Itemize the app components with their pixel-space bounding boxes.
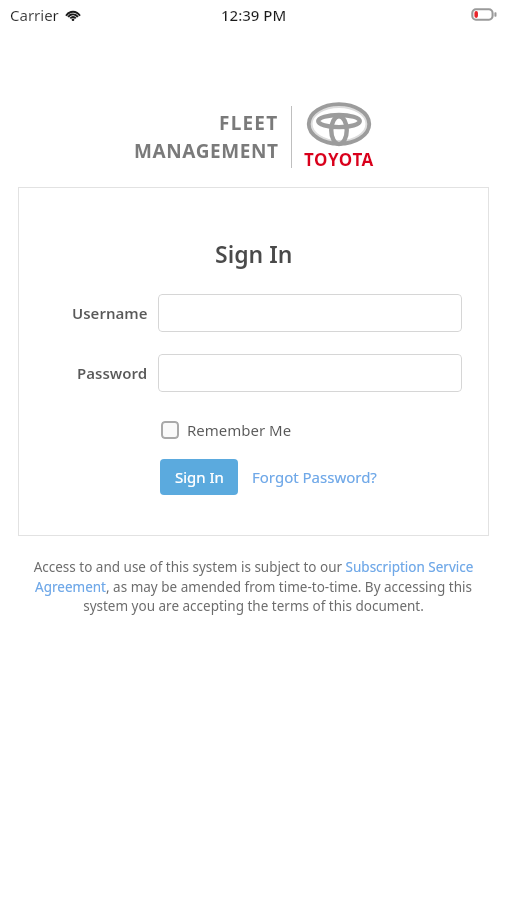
button[interactable]: Forgot Password?	[246, 459, 383, 495]
staticText: Sign In	[215, 238, 293, 269]
button[interactable]	[158, 294, 462, 332]
staticText: Sign In	[175, 467, 224, 487]
staticText: Forgot Password?	[252, 467, 377, 487]
staticText: 12:39 PM	[221, 5, 287, 25]
staticText: Password	[77, 363, 148, 383]
staticText: Username	[72, 303, 148, 323]
staticText: FLEET	[219, 110, 279, 136]
button[interactable]: Sign In	[160, 459, 238, 495]
staticText: Access to and use of this system is subj…	[30, 558, 477, 615]
staticText: Carrier	[10, 5, 59, 25]
staticText: TOYOTA	[304, 148, 374, 171]
button[interactable]	[158, 354, 462, 392]
button[interactable]: Remember Me	[159, 418, 294, 442]
staticText: Remember Me	[187, 420, 292, 440]
staticText: MANAGEMENT	[134, 138, 279, 164]
